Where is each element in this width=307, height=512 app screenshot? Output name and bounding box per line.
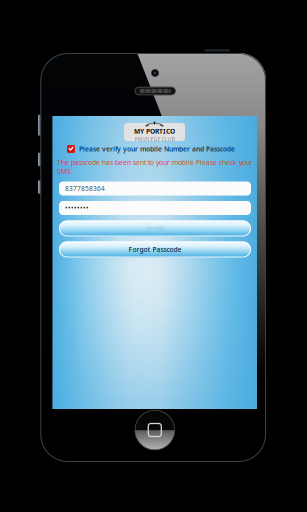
button[interactable]: •••••••• xyxy=(59,201,251,215)
button[interactable]: MY PORTICO xyxy=(124,123,185,141)
staticText: Please verify your mobile Number and Pas… xyxy=(79,145,235,153)
staticText: Forgot Passcode xyxy=(128,245,181,254)
staticText: PRIVILEGE CLUB xyxy=(134,136,174,143)
button[interactable]: 8377858364 xyxy=(59,181,251,195)
button[interactable]: Home xyxy=(135,410,175,450)
staticText: The passcode has been sent to your mobil… xyxy=(57,158,253,176)
staticText: Verify xyxy=(145,224,164,233)
staticText: 8377858364 xyxy=(65,184,105,193)
staticText: •••••••• xyxy=(65,204,89,212)
staticText: MY PORTICO xyxy=(134,127,175,136)
button[interactable]: Forgot Passcode xyxy=(59,241,251,257)
button[interactable]: Verify xyxy=(59,220,251,236)
